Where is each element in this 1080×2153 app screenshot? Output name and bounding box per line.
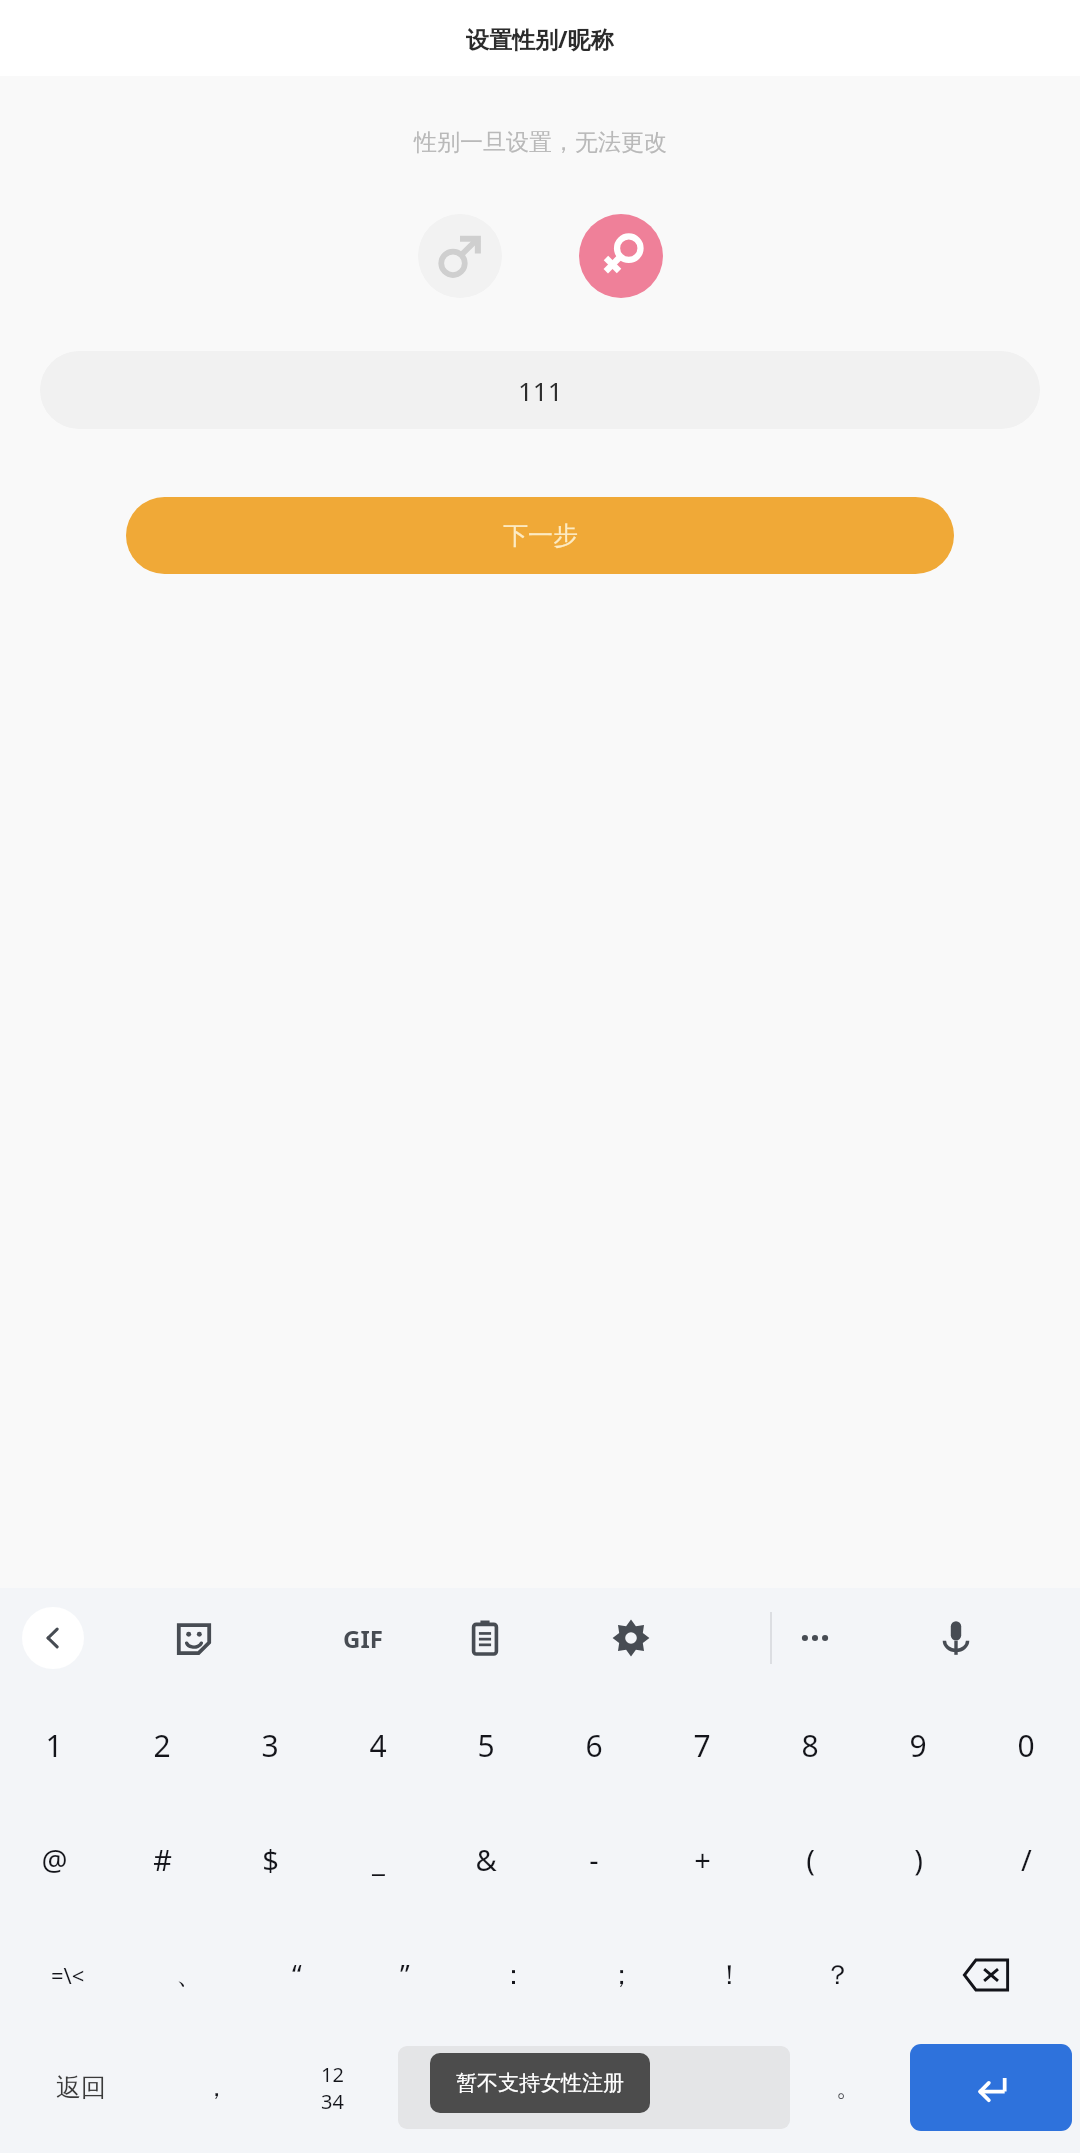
staticText: 拼音 — [571, 2073, 617, 2102]
button[interactable]: 剪贴板 — [447, 1600, 523, 1676]
staticText: & — [475, 1840, 497, 1879]
button[interactable]: “ — [243, 1917, 351, 2032]
button[interactable]: 语音输入 — [918, 1600, 994, 1676]
other: 更多 — [797, 1620, 833, 1656]
staticText: 5 — [477, 1725, 495, 1766]
staticText: 设置性别/昵称 — [466, 23, 614, 54]
button[interactable]: 表情 — [156, 1600, 232, 1676]
staticText: 9 — [909, 1725, 927, 1766]
button[interactable]: 8 — [756, 1688, 864, 1802]
staticText: GIF — [343, 1622, 383, 1655]
staticText: ” — [400, 1956, 410, 1993]
button[interactable]: 下一步 — [126, 497, 954, 574]
button[interactable]: 返回 — [0, 2032, 162, 2143]
button[interactable]: _ — [324, 1802, 432, 1917]
button[interactable]: 回车 — [910, 2044, 1072, 2131]
staticText: 、 — [176, 1958, 203, 1992]
staticText: 111 — [518, 373, 563, 408]
staticText: 下一步 — [503, 520, 578, 551]
staticText: 0 — [1017, 1725, 1035, 1766]
staticText: ！ — [716, 1958, 743, 1992]
other: 设置 — [611, 1618, 651, 1658]
button[interactable]: # — [108, 1802, 216, 1917]
button[interactable]: 删除 — [891, 1917, 1080, 2032]
button[interactable]: 9 — [864, 1688, 972, 1802]
staticText: # — [153, 1840, 172, 1879]
button[interactable]: $ — [216, 1802, 324, 1917]
staticText: 7 — [693, 1725, 711, 1766]
button[interactable]: 5 — [432, 1688, 540, 1802]
button[interactable]: @ — [0, 1802, 108, 1917]
button[interactable]: 、 — [135, 1917, 243, 2032]
button[interactable]: ( — [756, 1802, 864, 1917]
button[interactable]: 拼音 — [398, 2046, 790, 2129]
button[interactable]: 111 — [40, 351, 1040, 429]
staticText: ： — [500, 1958, 527, 1992]
button[interactable]: ” — [351, 1917, 459, 2032]
staticText: 8 — [801, 1725, 819, 1766]
button[interactable]: ： — [459, 1917, 567, 2032]
staticText: 4 — [369, 1725, 387, 1766]
button[interactable]: / — [972, 1802, 1080, 1917]
button[interactable]: ) — [864, 1802, 972, 1917]
button[interactable]: ？ — [783, 1917, 891, 2032]
staticText: ； — [608, 1958, 635, 1992]
staticText: $ — [262, 1840, 279, 1879]
button[interactable]: 更多 — [777, 1600, 853, 1676]
staticText: =\< — [51, 1960, 85, 1990]
button[interactable]: 6 — [540, 1688, 648, 1802]
staticText: ) — [914, 1840, 923, 1879]
staticText: @ — [41, 1840, 68, 1879]
staticText: 34 — [321, 2088, 344, 2115]
button[interactable]: 4 — [324, 1688, 432, 1802]
staticText: ？ — [824, 1958, 851, 1992]
button[interactable]: ！ — [675, 1917, 783, 2032]
staticText: 性别一旦设置，无法更改 — [414, 128, 667, 157]
button[interactable]: - — [540, 1802, 648, 1917]
button[interactable]: 数字键盘 — [270, 2032, 394, 2143]
other: 剪贴板 — [466, 1619, 504, 1657]
button[interactable]: + — [648, 1802, 756, 1917]
button[interactable]: ； — [567, 1917, 675, 2032]
button[interactable]: 男性 — [418, 214, 502, 298]
staticText: + — [694, 1840, 711, 1879]
button[interactable]: 0 — [972, 1688, 1080, 1802]
staticText: 6 — [585, 1725, 603, 1766]
button[interactable]: GIF — [318, 1588, 408, 1688]
button[interactable]: 设置 — [593, 1600, 669, 1676]
button[interactable]: 1 — [0, 1688, 108, 1802]
staticText: ( — [806, 1840, 815, 1879]
staticText: 12 — [321, 2061, 344, 2088]
other: 语音输入 — [936, 1618, 976, 1658]
button[interactable]: 3 — [216, 1688, 324, 1802]
staticText: 暂不支持女性注册 — [456, 2070, 624, 2096]
staticText: / — [1021, 1840, 1032, 1879]
staticText: - — [589, 1840, 599, 1879]
button[interactable]: 。 — [794, 2032, 902, 2143]
button[interactable]: 女性 — [579, 214, 663, 298]
other: 表情 — [175, 1619, 213, 1657]
staticText: “ — [292, 1956, 302, 1993]
button[interactable]: 2 — [108, 1688, 216, 1802]
button[interactable]: =\< — [0, 1917, 135, 2032]
staticText: 1 — [45, 1725, 63, 1766]
staticText: 2 — [153, 1725, 171, 1766]
staticText: 。 — [836, 2072, 861, 2103]
staticText: 3 — [261, 1725, 279, 1766]
staticText: 返回 — [56, 2072, 106, 2103]
staticText: _ — [372, 1840, 385, 1879]
button[interactable]: 7 — [648, 1688, 756, 1802]
button[interactable]: 返回 — [22, 1607, 84, 1669]
button[interactable]: ， — [162, 2032, 270, 2143]
staticText: ， — [204, 2072, 229, 2103]
button[interactable]: & — [432, 1802, 540, 1917]
